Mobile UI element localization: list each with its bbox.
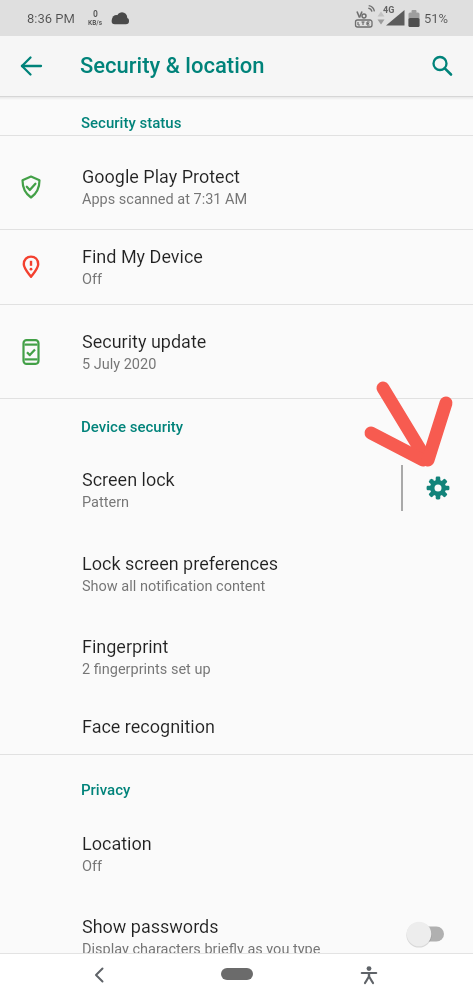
button[interactable] xyxy=(221,968,253,980)
button[interactable]: Find My Device xyxy=(0,230,473,304)
button[interactable]: Fingerprint xyxy=(0,612,473,697)
button[interactable] xyxy=(349,955,389,995)
staticText: Security update xyxy=(82,331,207,352)
staticText: Show all notification content xyxy=(82,578,266,595)
button[interactable] xyxy=(14,47,52,85)
staticText: Face recognition xyxy=(82,716,215,737)
staticText: 0 xyxy=(93,9,98,19)
button[interactable]: Screen lock xyxy=(0,447,401,529)
staticText: Display characters briefly as you type xyxy=(82,941,321,958)
button[interactable] xyxy=(403,447,473,529)
staticText: Privacy xyxy=(81,781,131,799)
staticText: 2 fingerprints set up xyxy=(82,661,211,678)
staticText: Security & location xyxy=(80,53,265,79)
button[interactable]: Face recognition xyxy=(0,697,473,754)
staticText: Security status xyxy=(81,114,182,132)
staticText: 51% xyxy=(424,11,449,26)
staticText: Device security xyxy=(81,418,184,436)
staticText: Screen lock xyxy=(82,469,175,490)
button[interactable]: Google Play Protect xyxy=(0,136,473,229)
staticText: KB/s xyxy=(88,19,103,27)
staticText: Pattern xyxy=(82,494,130,511)
staticText: 4G xyxy=(383,5,395,16)
button[interactable]: Location xyxy=(0,810,473,892)
staticText: Location xyxy=(82,833,152,854)
button[interactable] xyxy=(423,47,461,85)
button[interactable]: Show passwords xyxy=(0,892,473,974)
staticText: Apps scanned at 7:31 AM xyxy=(82,191,248,208)
button[interactable]: Lock screen preferences xyxy=(0,529,473,612)
staticText: Google Play Protect xyxy=(82,166,240,187)
button[interactable] xyxy=(80,955,120,995)
staticText: Off xyxy=(82,271,103,288)
button[interactable]: Security update xyxy=(0,305,473,398)
staticText: 8:36 PM xyxy=(27,11,75,26)
staticText: Off xyxy=(82,858,103,875)
staticText: 5 July 2020 xyxy=(82,356,157,373)
staticText: Fingerprint xyxy=(82,636,169,657)
staticText: Find My Device xyxy=(82,246,203,267)
staticText: Show passwords xyxy=(82,916,219,937)
staticText: Lock screen preferences xyxy=(82,553,278,574)
